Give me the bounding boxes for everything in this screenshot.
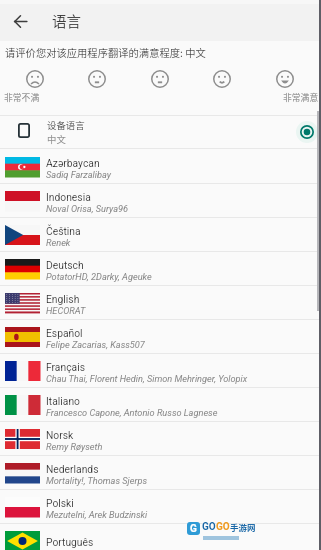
staticText: Remy Røyseth <box>46 441 103 452</box>
staticText: Felipe Zacarias, Kass507 <box>46 339 145 350</box>
button[interactable]: Français <box>0 354 321 388</box>
staticText: 中文 <box>47 132 66 146</box>
staticText: Renek <box>46 237 71 248</box>
staticText: Italiano <box>46 395 80 407</box>
button[interactable]: Italiano <box>0 388 321 422</box>
staticText: Azərbaycan <box>46 157 100 169</box>
button[interactable]: Rating 3 <box>149 68 171 90</box>
staticText: 非常满意 <box>283 91 319 104</box>
staticText: Deutsch <box>46 259 84 271</box>
button[interactable]: Deutsch <box>0 252 321 286</box>
button[interactable]: Rating 2 <box>86 68 108 90</box>
button[interactable]: Azərbaycan <box>0 150 321 184</box>
staticText: G <box>190 523 197 535</box>
staticText: Francesco Capone, Antonio Russo Lagnese <box>46 407 218 418</box>
staticText: HECORAT <box>46 305 86 316</box>
staticText: 非常不满 <box>4 91 40 104</box>
staticText: 手游网 <box>230 521 256 533</box>
button[interactable]: Português <box>0 524 321 550</box>
button[interactable]: Indonesia <box>0 184 321 218</box>
staticText: Français <box>46 361 85 373</box>
staticText: 请评价您对该应用程序翻译的满意程度: 中文 <box>5 45 206 60</box>
button[interactable]: Rating 5 <box>274 68 296 90</box>
staticText: Noval Orisa, Surya96 <box>46 203 128 214</box>
staticText: Čeština <box>46 225 81 237</box>
button[interactable]: Čeština <box>0 218 321 252</box>
staticText: Mezutelni, Arek Budzinski <box>46 509 148 520</box>
staticText: GO <box>202 521 216 533</box>
staticText: Polski <box>46 497 74 509</box>
staticText: PotatorHD, 2Darky, Ageuke <box>46 271 152 282</box>
staticText: Português <box>46 536 94 548</box>
staticText: Español <box>46 327 83 339</box>
staticText: Norsk <box>46 429 74 441</box>
button[interactable]: Rating 1 <box>24 68 46 90</box>
staticText: Mortality!, Thomas Sjerps <box>46 475 148 486</box>
button[interactable]: Nederlands <box>0 456 321 490</box>
staticText: Indonesia <box>46 191 91 203</box>
staticText: Nederlands <box>46 463 99 475</box>
staticText: 设备语言 <box>47 118 85 132</box>
staticText: Sadiq Farzalibay <box>46 169 111 180</box>
staticText: GO <box>216 521 230 533</box>
button[interactable]: Español <box>0 320 321 354</box>
staticText: Chau Thai, Florent Hedin, Simon Mehringe… <box>46 373 248 384</box>
button[interactable]: 设备语言 <box>0 115 321 149</box>
staticText: 语言 <box>52 10 81 31</box>
button[interactable]: Norsk <box>0 422 321 456</box>
button[interactable]: Polski <box>0 490 321 524</box>
button[interactable]: English <box>0 286 321 320</box>
button[interactable]: Rating 4 <box>211 68 233 90</box>
button[interactable]: Back <box>8 9 32 33</box>
staticText: English <box>46 293 80 305</box>
